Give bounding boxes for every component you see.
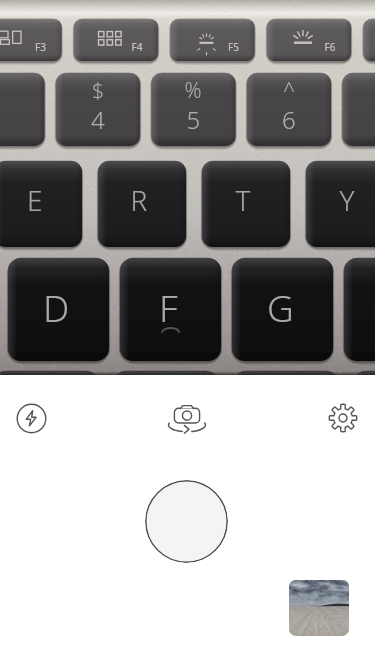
button[interactable]: Take photo xyxy=(145,480,228,563)
button[interactable]: Gallery xyxy=(289,580,349,636)
button[interactable]: Flash xyxy=(11,398,52,439)
button[interactable]: Settings xyxy=(323,398,363,438)
button[interactable]: Switch camera xyxy=(166,399,208,441)
